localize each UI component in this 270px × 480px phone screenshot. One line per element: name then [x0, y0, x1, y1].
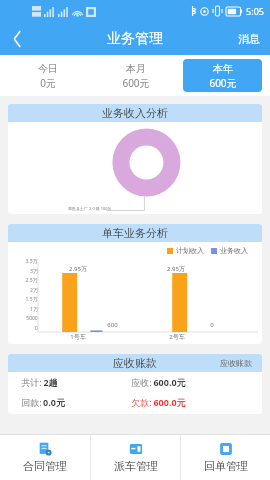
staticText: 5:05: [246, 5, 264, 17]
staticText: 0: [35, 325, 38, 332]
staticText: 单车业务分析: [102, 226, 168, 240]
staticText: 2.95万: [167, 265, 185, 273]
button[interactable]: 合同管理: [0, 435, 90, 480]
staticText: 应收账款: [113, 356, 157, 370]
staticText: 2.95万: [69, 265, 87, 273]
staticText: 1号车: [70, 333, 86, 341]
staticText: 0元: [40, 76, 56, 90]
button[interactable]: 单车业务分析: [8, 224, 262, 344]
staticText: 2号车: [169, 333, 185, 341]
staticText: 0: [210, 321, 214, 329]
staticText: 2万: [30, 287, 38, 294]
staticText: 鹿邑县土厂 2.0 最 100%: [68, 206, 111, 211]
button[interactable]: 本月: [96, 59, 175, 92]
staticText: 本年: [213, 62, 233, 75]
staticText: 本月: [126, 62, 146, 75]
button[interactable]: 今日: [8, 59, 88, 92]
staticText: 应收账款: [220, 358, 252, 368]
staticText: 3.5万: [25, 258, 38, 265]
staticText: 回单管理: [204, 459, 248, 473]
staticText: 今日: [38, 62, 58, 75]
button[interactable]: 本年: [183, 59, 262, 92]
staticText: 业务收入: [220, 246, 248, 255]
staticText: 2趟: [43, 376, 58, 388]
staticText: 应收:: [130, 376, 153, 388]
staticText: 业务收入分析: [102, 106, 168, 120]
button[interactable]: 应收账款: [8, 354, 262, 414]
staticText: 回款:: [20, 396, 43, 408]
staticText: 1万: [30, 306, 38, 313]
staticText: 欠款:: [130, 396, 153, 408]
button[interactable]: 消息: [228, 22, 270, 55]
staticText: 1.5万: [25, 296, 38, 303]
staticText: 600元: [209, 76, 237, 90]
staticText: 5000: [26, 315, 38, 322]
staticText: 业务管理: [107, 30, 163, 48]
staticText: 600.0元: [153, 376, 186, 388]
button[interactable]: Back: [0, 22, 34, 55]
staticText: 600元: [122, 76, 150, 90]
button[interactable]: 回单管理: [181, 435, 270, 480]
staticText: 2.5万: [25, 277, 38, 284]
staticText: 计划收入: [176, 246, 204, 255]
staticText: 0.0元: [43, 396, 65, 408]
staticText: 600: [107, 321, 118, 329]
staticText: 600.0元: [153, 396, 186, 408]
staticText: 消息: [238, 32, 260, 46]
staticText: 3万: [30, 268, 38, 275]
staticText: 合同管理: [23, 459, 67, 473]
button[interactable]: 业务收入分析: [8, 104, 262, 214]
button[interactable]: 派车管理: [91, 435, 180, 480]
staticText: 派车管理: [114, 459, 158, 473]
staticText: 共计:: [20, 376, 43, 388]
